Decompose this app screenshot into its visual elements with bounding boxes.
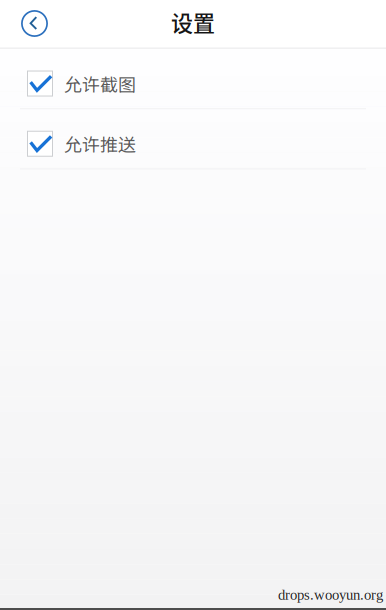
staticText: 设置 xyxy=(171,6,215,38)
staticText: drops.wooyun.org xyxy=(278,587,383,603)
staticText: 允许推送 xyxy=(64,131,136,157)
staticText: 允许截图 xyxy=(64,70,136,97)
button[interactable]: 允许推送 xyxy=(0,109,386,169)
button[interactable]: Back xyxy=(0,0,58,47)
button[interactable]: 允许截图 xyxy=(0,49,386,109)
